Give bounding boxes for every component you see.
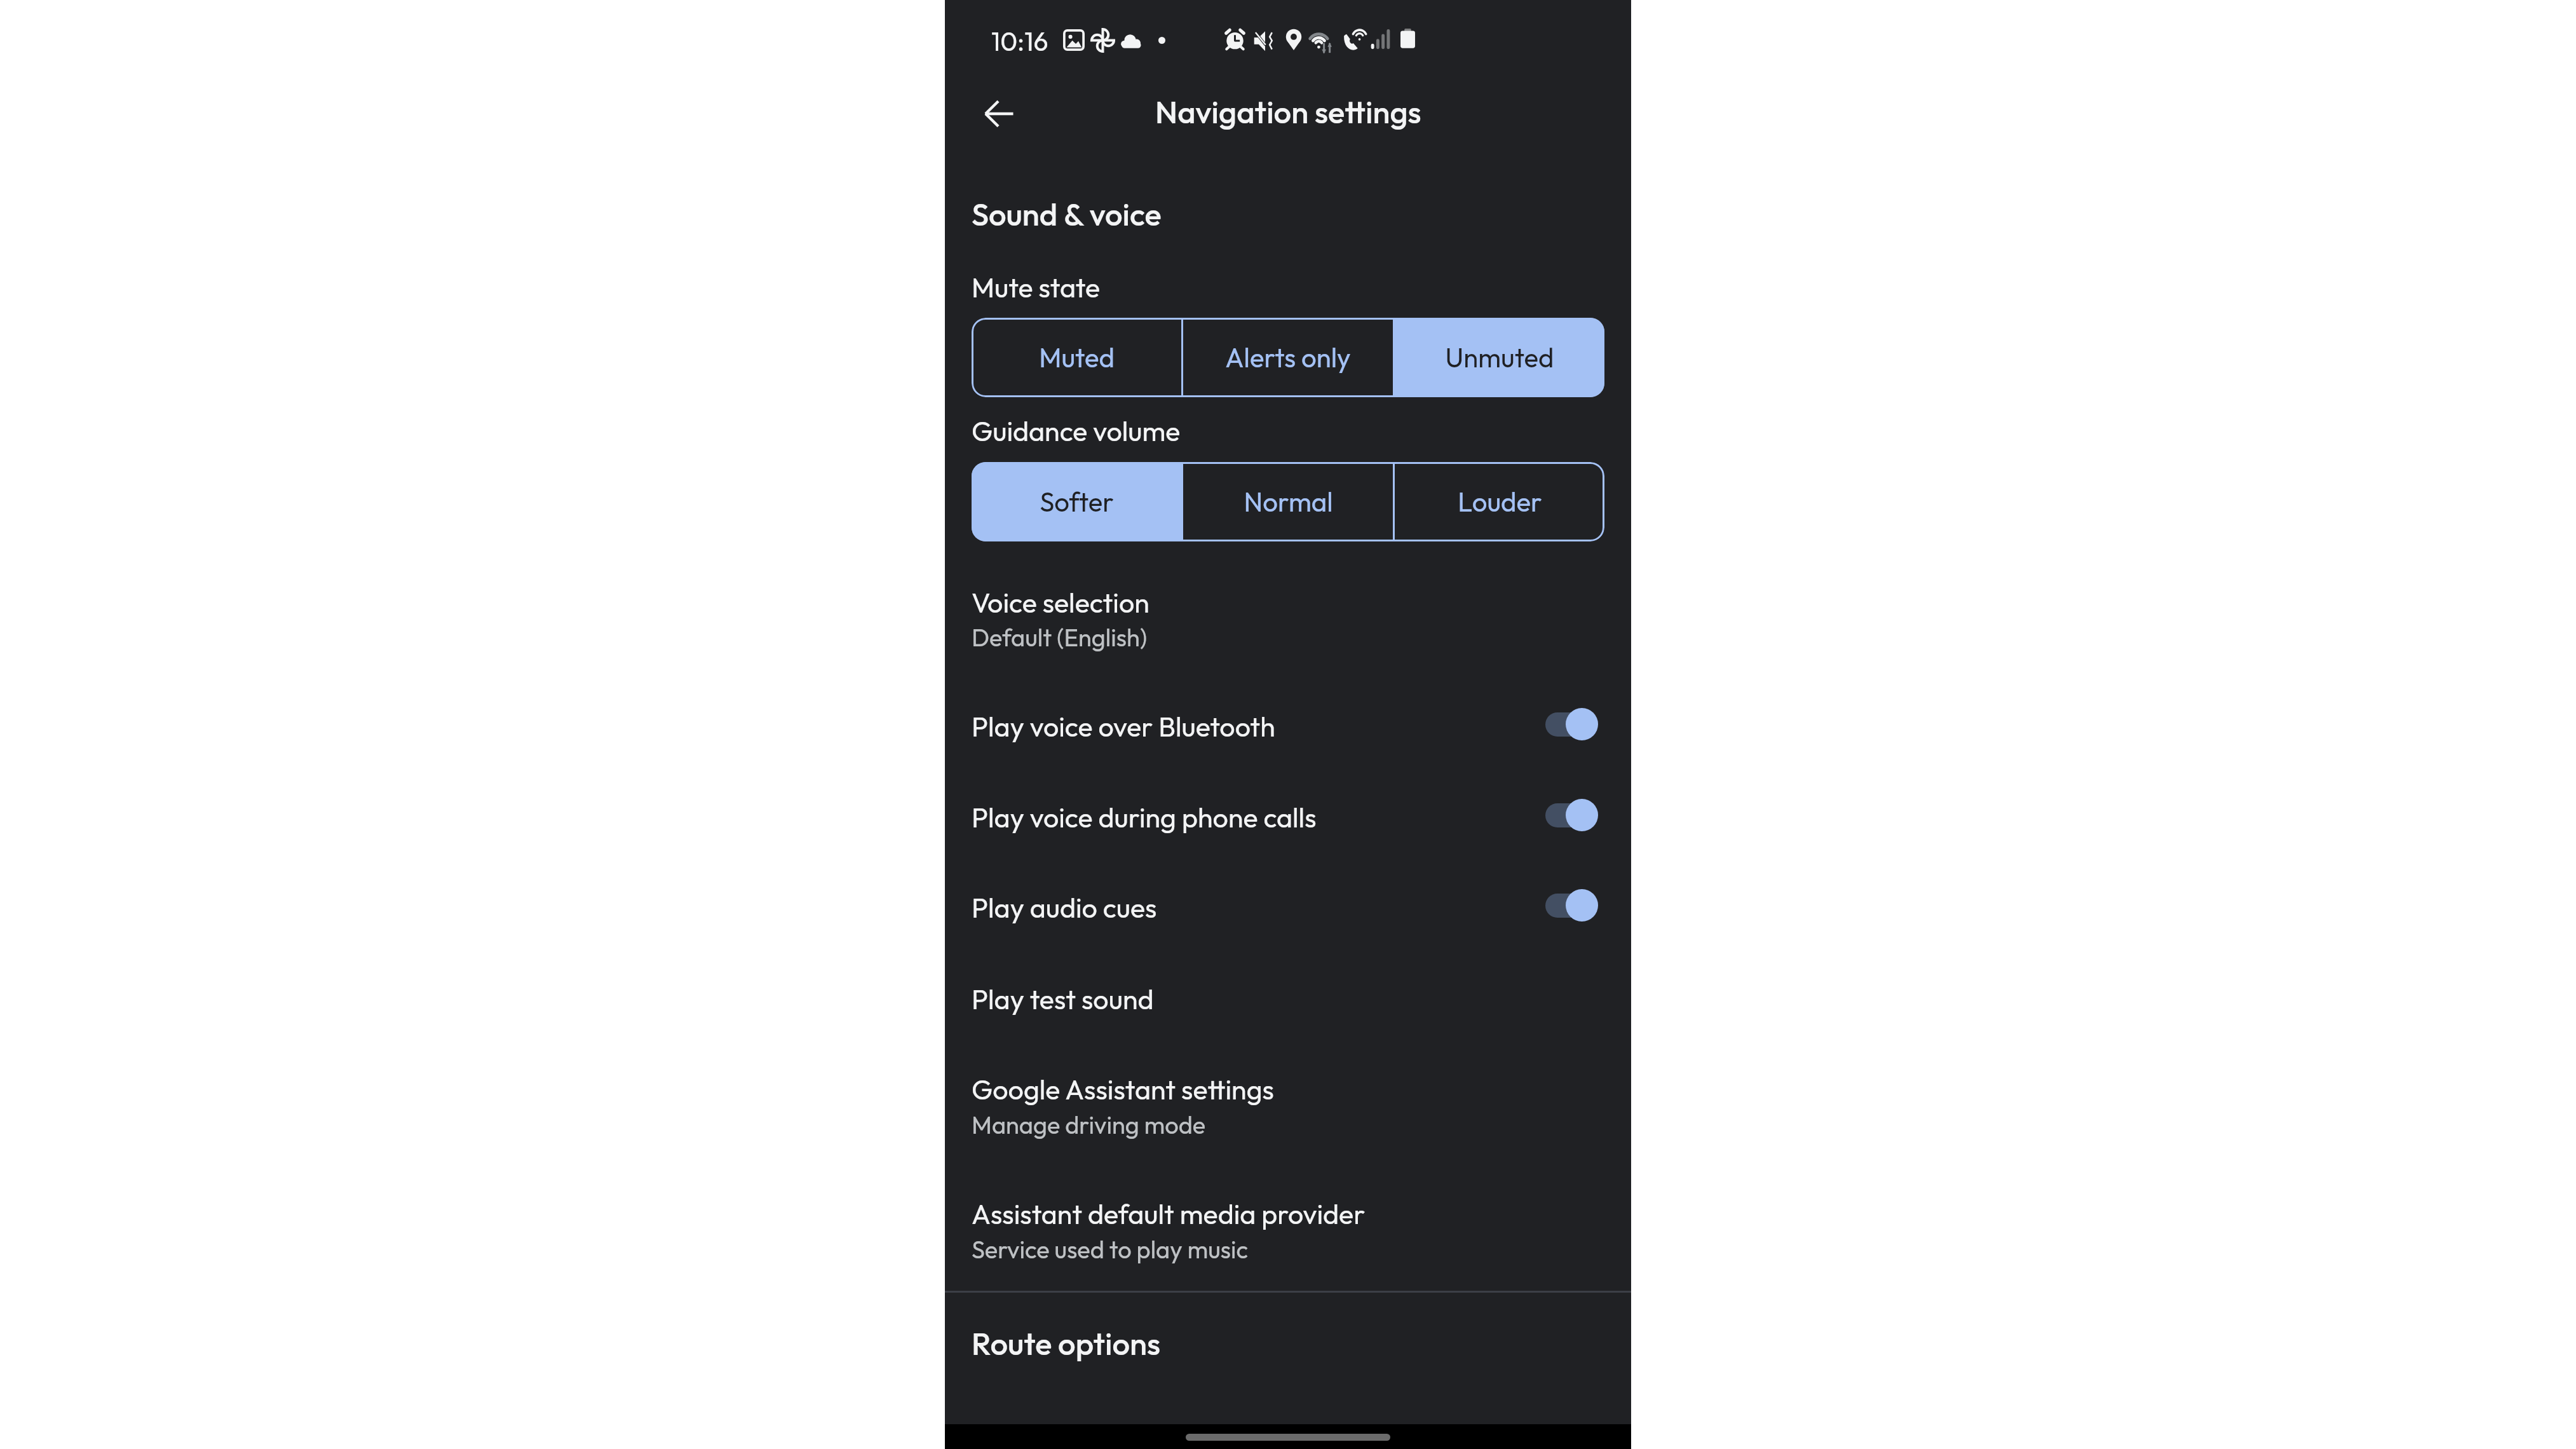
button[interactable]: Normal	[1183, 462, 1393, 541]
staticText: Softer	[1040, 485, 1114, 519]
staticText: Louder	[1458, 485, 1542, 519]
button[interactable]: Unmuted	[1395, 318, 1604, 397]
staticText: 10:16	[991, 25, 1048, 58]
staticText: Play voice over Bluetooth	[972, 709, 1275, 744]
button[interactable]: Play voice during phone calls	[945, 768, 1631, 847]
staticText: Sound & voice	[972, 194, 1162, 234]
button[interactable]: Softer	[972, 462, 1181, 541]
button[interactable]: Assistant default media provider	[945, 1171, 1631, 1285]
staticText: Assistant default media provider	[972, 1197, 1366, 1231]
staticText: Manage driving mode	[972, 1110, 1206, 1140]
staticText: Navigation settings	[1155, 92, 1421, 132]
staticText: Unmuted	[1445, 341, 1554, 374]
staticText: Service used to play music	[972, 1234, 1249, 1265]
button[interactable]: Google Assistant settings	[945, 1046, 1631, 1160]
staticText: Play audio cues	[972, 890, 1157, 925]
button[interactable]: Voice selection	[945, 559, 1631, 674]
staticText: Route options	[972, 1324, 1161, 1363]
staticText: Default (English)	[972, 622, 1148, 653]
staticText: Play voice during phone calls	[972, 800, 1317, 834]
button[interactable]: Play audio cues	[945, 859, 1631, 937]
staticText: Mute state	[972, 270, 1101, 304]
button[interactable]: Back	[973, 88, 1024, 139]
button[interactable]: Play voice over Bluetooth	[945, 677, 1631, 756]
button[interactable]: Alerts only	[1183, 318, 1393, 397]
staticText: Google Assistant settings	[972, 1072, 1274, 1106]
staticText: Guidance volume	[972, 414, 1181, 448]
staticText: Muted	[1039, 341, 1115, 374]
staticText: Alerts only	[1225, 341, 1351, 374]
button[interactable]: Play test sound	[945, 953, 1631, 1036]
staticText: Play test sound	[972, 982, 1154, 1016]
button[interactable]: Louder	[1395, 462, 1604, 541]
button[interactable]: Muted	[972, 318, 1181, 397]
staticText: Voice selection	[972, 585, 1149, 620]
staticText: Normal	[1244, 485, 1333, 519]
